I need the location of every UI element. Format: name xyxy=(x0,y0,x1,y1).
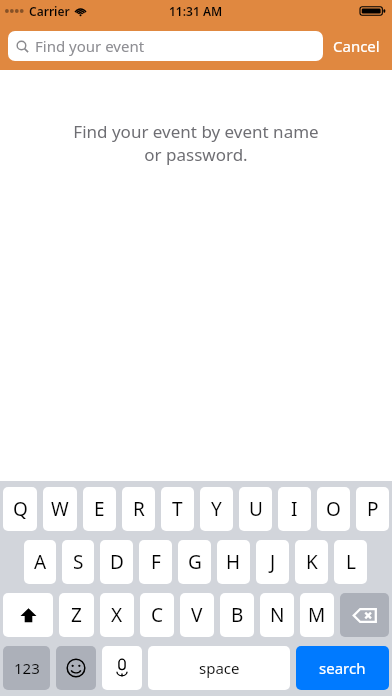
button[interactable]: F xyxy=(139,540,172,584)
staticText: O xyxy=(326,496,341,522)
button[interactable]: Z xyxy=(59,593,94,637)
staticText: E xyxy=(94,496,105,522)
staticText: space xyxy=(199,658,240,678)
staticText: X xyxy=(111,602,123,628)
button[interactable]: Q xyxy=(3,487,37,531)
button[interactable]: O xyxy=(317,487,350,531)
staticText: I xyxy=(291,496,298,522)
button[interactable]: Shift xyxy=(3,593,53,637)
staticText: D xyxy=(110,549,124,575)
staticText: U xyxy=(249,496,263,522)
button[interactable]: N xyxy=(260,593,294,637)
staticText: A xyxy=(34,549,47,575)
button[interactable]: K xyxy=(295,540,328,584)
staticText: 123 xyxy=(14,658,40,678)
button[interactable]: Dictation xyxy=(102,646,142,690)
button[interactable]: Cancel xyxy=(323,30,382,62)
button[interactable]: X xyxy=(100,593,134,637)
button[interactable]: T xyxy=(161,487,194,531)
button[interactable]: H xyxy=(217,540,250,584)
staticText: K xyxy=(306,549,318,575)
staticText: W xyxy=(51,496,69,522)
staticText: R xyxy=(133,496,145,522)
staticText: V xyxy=(191,602,203,628)
button[interactable]: I xyxy=(278,487,311,531)
staticText: Cancel xyxy=(333,36,380,56)
staticText: H xyxy=(226,549,241,575)
button[interactable]: Numbers xyxy=(3,646,50,690)
staticText: F xyxy=(151,549,161,575)
staticText: B xyxy=(231,602,244,628)
button[interactable]: P xyxy=(356,487,389,531)
button[interactable]: Emoji xyxy=(56,646,96,690)
staticText: M xyxy=(308,602,326,628)
button[interactable]: A xyxy=(24,540,56,584)
staticText: G xyxy=(188,549,202,575)
button[interactable]: Backspace xyxy=(340,593,389,637)
button[interactable]: R xyxy=(122,487,155,531)
staticText: Q xyxy=(13,496,28,522)
staticText: Find your event by event name or passwor… xyxy=(30,120,362,166)
button[interactable]: Find your event xyxy=(8,31,323,61)
staticText: search xyxy=(319,658,366,678)
staticText: Y xyxy=(211,496,222,522)
button[interactable]: Y xyxy=(200,487,233,531)
staticText: T xyxy=(172,496,183,522)
staticText: Find your event xyxy=(35,36,145,56)
button[interactable]: M xyxy=(300,593,334,637)
staticText: N xyxy=(270,602,285,628)
staticText: 11:31 AM xyxy=(169,3,223,19)
staticText: C xyxy=(151,602,164,628)
button[interactable]: search xyxy=(296,646,389,690)
button[interactable]: B xyxy=(220,593,254,637)
button[interactable]: L xyxy=(334,540,367,584)
staticText: S xyxy=(73,549,84,575)
button[interactable]: E xyxy=(83,487,116,531)
button[interactable]: D xyxy=(100,540,133,584)
staticText: Z xyxy=(71,602,82,628)
button[interactable]: V xyxy=(180,593,214,637)
staticText: L xyxy=(346,549,356,575)
button[interactable]: space xyxy=(148,646,290,690)
button[interactable]: J xyxy=(256,540,289,584)
button[interactable]: S xyxy=(62,540,94,584)
staticText: P xyxy=(367,496,379,522)
button[interactable]: W xyxy=(43,487,77,531)
staticText: J xyxy=(270,549,276,575)
button[interactable]: C xyxy=(140,593,174,637)
button[interactable]: U xyxy=(239,487,272,531)
staticText: Carrier xyxy=(29,3,70,19)
button[interactable]: G xyxy=(178,540,211,584)
